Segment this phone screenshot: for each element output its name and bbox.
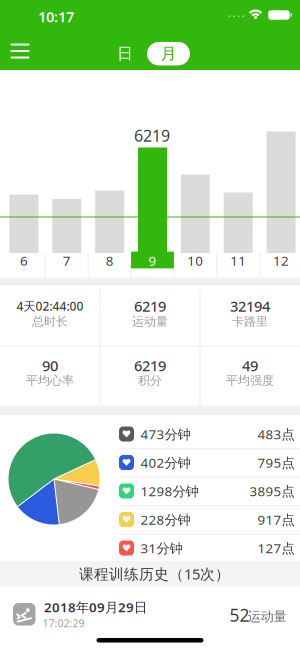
- staticText: 7: [63, 252, 71, 269]
- staticText: 17:02:29: [42, 616, 84, 630]
- staticText: 运动量: [247, 608, 286, 625]
- button[interactable]: 日: [107, 42, 143, 65]
- staticText: 11: [230, 252, 246, 269]
- staticText: 90: [42, 356, 58, 375]
- staticText: 10:17: [38, 7, 74, 26]
- staticText: 917点: [257, 511, 294, 528]
- staticText: 平均心率: [26, 373, 74, 388]
- staticText: 3895点: [249, 482, 294, 500]
- staticText: 6219: [134, 356, 166, 375]
- staticText: 49: [242, 356, 258, 375]
- staticText: 9: [148, 252, 156, 269]
- staticText: 795点: [257, 454, 294, 471]
- staticText: 总时长: [32, 314, 68, 329]
- staticText: 积分: [138, 373, 162, 388]
- staticText: 运动量: [132, 314, 168, 329]
- staticText: 8: [106, 252, 114, 269]
- staticText: 月: [160, 44, 176, 64]
- staticText: 10: [187, 252, 203, 269]
- staticText: 课程训练历史（15次）: [79, 564, 230, 583]
- staticText: 4天02:44:00: [16, 298, 83, 314]
- staticText: 卡路里: [232, 314, 268, 329]
- button[interactable]: [10, 43, 29, 58]
- button[interactable]: 2018年09月29日: [0, 586, 300, 649]
- staticText: 6: [20, 252, 28, 269]
- staticText: 228分钟: [140, 511, 190, 528]
- staticText: 127点: [257, 539, 294, 557]
- staticText: 12: [273, 252, 289, 269]
- staticText: 31分钟: [140, 539, 182, 557]
- staticText: 473分钟: [140, 425, 190, 443]
- staticText: 平均强度: [226, 373, 274, 388]
- staticText: 1298分钟: [140, 482, 198, 500]
- staticText: 52: [229, 603, 249, 626]
- staticText: 2018年09月29日: [44, 598, 147, 616]
- staticText: 6219: [134, 125, 170, 146]
- staticText: 483点: [257, 425, 294, 443]
- staticText: 6219: [134, 296, 166, 316]
- staticText: 日: [117, 44, 133, 64]
- staticText: 32194: [230, 296, 270, 316]
- button[interactable]: 月: [147, 42, 190, 65]
- staticText: 402分钟: [140, 454, 190, 471]
